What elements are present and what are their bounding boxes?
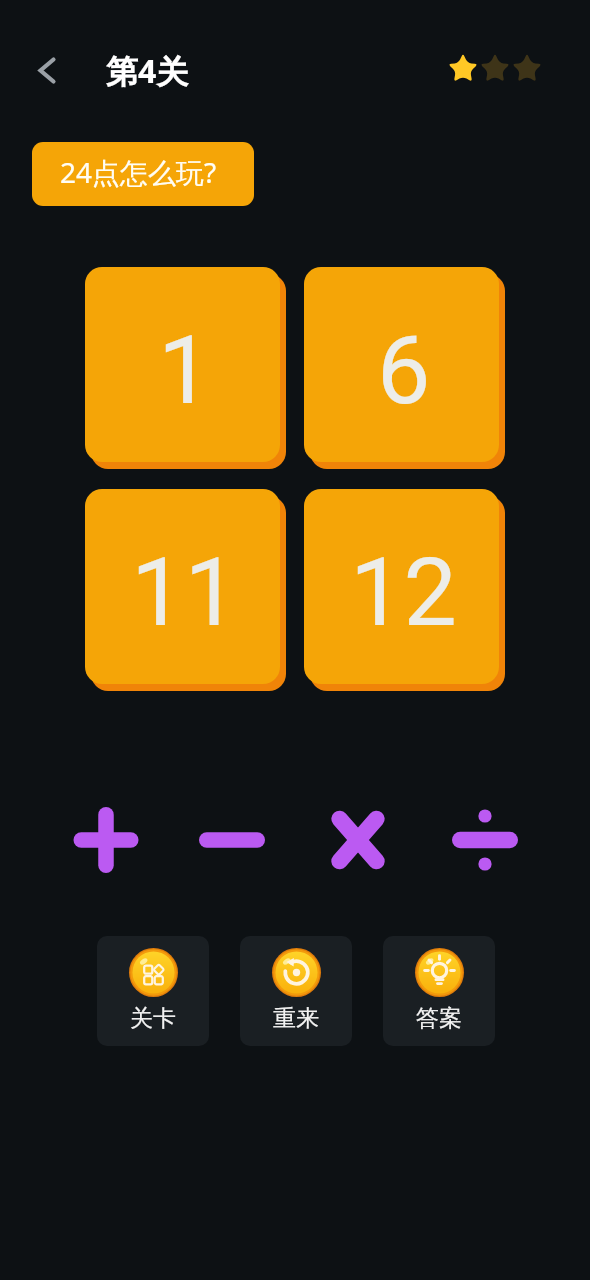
staticText: 12 (350, 537, 457, 648)
staticText: 重来 (273, 1004, 319, 1033)
button[interactable]: Plus (56, 790, 156, 890)
button[interactable]: 12 (304, 489, 505, 691)
button[interactable]: Minus (182, 790, 282, 890)
staticText: 1 (158, 315, 212, 426)
staticText: 6 (377, 315, 431, 426)
staticText: 11 (131, 537, 238, 648)
button[interactable]: 24点怎么玩? (32, 142, 254, 206)
staticText: 关卡 (130, 1004, 176, 1033)
staticText: 24点怎么玩? (60, 153, 217, 191)
staticText: 答案 (416, 1004, 462, 1033)
button[interactable]: 答案 (383, 936, 495, 1046)
button[interactable]: 6 (304, 267, 505, 469)
button[interactable]: Divide (435, 790, 535, 890)
button[interactable]: 关卡 (97, 936, 209, 1046)
button[interactable]: 1 (85, 267, 286, 469)
button[interactable]: 重来 (240, 936, 352, 1046)
button[interactable]: Back (18, 48, 63, 93)
staticText: 第4关 (106, 49, 189, 93)
button[interactable]: 11 (85, 489, 286, 691)
button[interactable]: Multiply (308, 790, 408, 890)
